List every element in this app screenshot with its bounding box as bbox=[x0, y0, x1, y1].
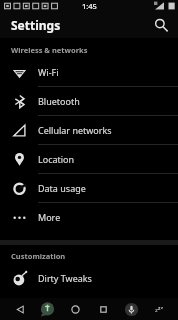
staticText: z bbox=[158, 305, 161, 312]
button[interactable]: More bbox=[0, 203, 178, 231]
button[interactable]: Search bbox=[149, 13, 173, 37]
button[interactable]: Location bbox=[0, 145, 178, 173]
staticText: Customization bbox=[11, 251, 66, 261]
staticText: Settings bbox=[11, 17, 61, 33]
staticText: 1:45 bbox=[82, 1, 97, 11]
staticText: Wireless & networks bbox=[11, 45, 88, 55]
staticText: z bbox=[161, 305, 163, 310]
button[interactable]: Data usage bbox=[0, 174, 178, 202]
button[interactable]: Assistant bbox=[35, 298, 59, 320]
staticText: Bluetooth bbox=[38, 95, 80, 107]
button[interactable]: Cellular networks bbox=[0, 116, 178, 144]
button[interactable]: Back bbox=[8, 298, 32, 320]
staticText: Location bbox=[38, 153, 75, 165]
button[interactable]: Voice search bbox=[119, 298, 143, 320]
staticText: z bbox=[155, 306, 158, 314]
button[interactable]: Bluetooth bbox=[0, 87, 178, 115]
button[interactable]: Wi-Fi bbox=[0, 58, 178, 86]
button[interactable]: Dirty Tweaks bbox=[0, 264, 178, 292]
button[interactable]: Sleep bbox=[146, 298, 170, 320]
staticText: Cellular networks bbox=[38, 124, 112, 136]
staticText: More bbox=[38, 211, 61, 223]
staticText: Wi-Fi bbox=[38, 66, 59, 78]
button[interactable]: Home bbox=[63, 298, 87, 320]
button[interactable]: Recents bbox=[91, 298, 115, 320]
staticText: Data usage bbox=[38, 182, 86, 194]
staticText: Dirty Tweaks bbox=[38, 272, 92, 284]
